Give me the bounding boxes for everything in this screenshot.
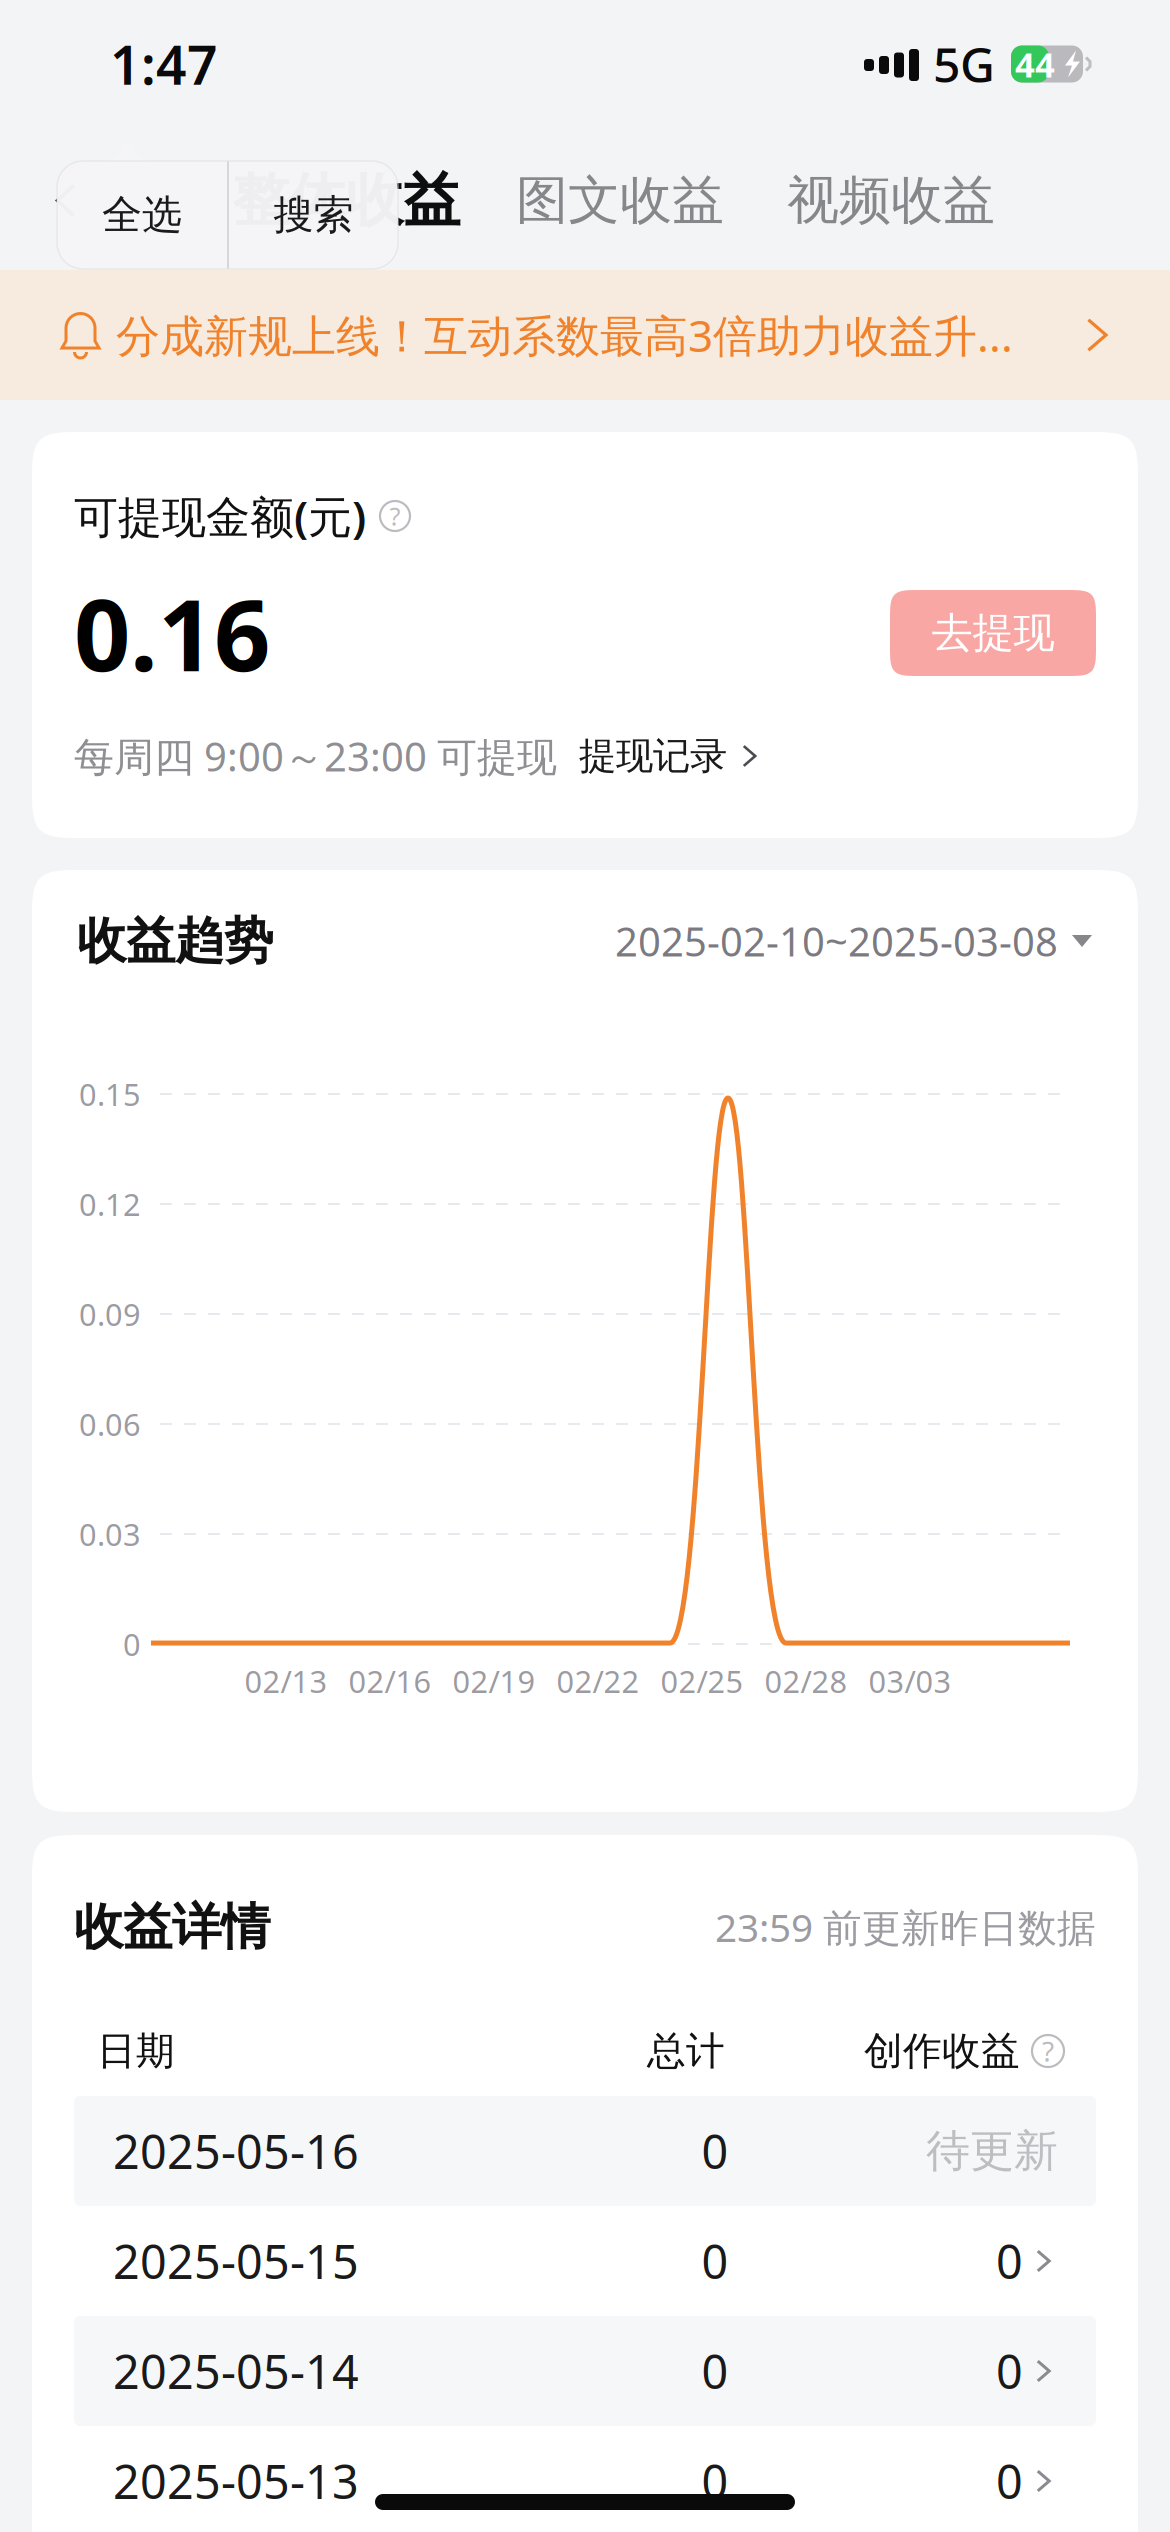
- staticText: 0: [123, 1624, 141, 1664]
- staticText: 可提现金额(元): [74, 487, 366, 545]
- staticText: 收益详情: [74, 1897, 270, 1957]
- staticText: 23:59 前更新昨日数据: [715, 1901, 1096, 1953]
- staticText: 0.06: [79, 1404, 141, 1444]
- staticText: 分成新规上线！互动系数最高3倍助力收益升...: [116, 306, 1013, 364]
- staticText: 44: [1015, 41, 1055, 87]
- staticText: ?: [1042, 2032, 1054, 2070]
- staticText: 0.16: [74, 567, 270, 698]
- staticText: 2025-05-15: [113, 2230, 359, 2292]
- staticText: 0: [701, 2450, 728, 2512]
- button[interactable]: Back: [42, 152, 90, 248]
- staticText: 0: [701, 2120, 728, 2182]
- button[interactable]: 2025-05-14: [32, 2316, 1138, 2426]
- staticText: 0: [701, 2340, 728, 2402]
- button[interactable]: 2025-05-13: [32, 2426, 1138, 2532]
- staticText: 图文收益: [516, 169, 724, 232]
- staticText: 02/28: [764, 1661, 847, 1701]
- staticText: 去提现: [931, 608, 1054, 658]
- staticText: 2025-05-14: [113, 2340, 359, 2402]
- staticText: 提现记录: [579, 733, 727, 779]
- staticText: 0.09: [79, 1294, 141, 1334]
- staticText: 02/25: [660, 1661, 743, 1701]
- staticText: 整体收益: [232, 165, 460, 236]
- staticText: 02/16: [348, 1661, 431, 1701]
- staticText: 5G: [933, 32, 995, 96]
- button[interactable]: 图文收益: [516, 152, 728, 248]
- staticText: 02/13: [244, 1661, 327, 1701]
- staticText: 03/03: [868, 1661, 951, 1701]
- staticText: 0: [701, 2230, 728, 2292]
- staticText: 02/22: [556, 1661, 639, 1701]
- staticText: 0.12: [79, 1184, 141, 1224]
- staticText: 02/19: [452, 1661, 535, 1701]
- staticText: 总计: [647, 2027, 725, 2075]
- button[interactable]: 分成新规上线！互动系数最高3倍助力收益升...: [0, 270, 1170, 400]
- button[interactable]: 2025-05-15: [32, 2206, 1138, 2316]
- staticText: 日期: [97, 2027, 175, 2075]
- staticText: 2025-05-13: [113, 2450, 359, 2512]
- staticText: 0: [996, 2340, 1023, 2402]
- button[interactable]: 视频收益: [787, 152, 999, 248]
- button[interactable]: 去提现: [890, 590, 1096, 676]
- staticText: 0: [996, 2230, 1023, 2292]
- staticText: 视频收益: [787, 169, 995, 232]
- staticText: 0.03: [79, 1514, 141, 1554]
- staticText: 每周四 9:00～23:00 可提现: [74, 729, 557, 782]
- button[interactable]: 搜索: [229, 161, 398, 269]
- staticText: 待更新: [926, 2124, 1058, 2178]
- staticText: 2025-05-16: [113, 2120, 359, 2182]
- staticText: 创作收益: [864, 2027, 1020, 2075]
- button[interactable]: 提现记录: [579, 733, 763, 779]
- staticText: 搜索: [273, 190, 353, 239]
- staticText: 0: [996, 2450, 1023, 2512]
- button[interactable]: 2025-02-10~2025-03-08: [615, 914, 1092, 968]
- button[interactable]: 整体收益: [232, 152, 472, 248]
- button[interactable]: 2025-05-16: [32, 2096, 1138, 2206]
- staticText: 全选: [102, 190, 182, 239]
- staticText: 收益趋势: [77, 911, 273, 971]
- button[interactable]: 全选: [57, 161, 227, 269]
- staticText: ?: [389, 499, 400, 533]
- staticText: 0.15: [79, 1074, 141, 1114]
- staticText: 1:47: [110, 29, 218, 99]
- staticText: 2025-02-10~2025-03-08: [615, 914, 1058, 967]
